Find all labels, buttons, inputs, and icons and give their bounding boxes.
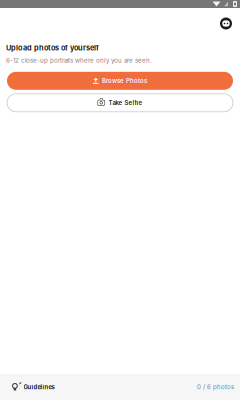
button[interactable]: Guidelines (12, 383, 54, 391)
staticText: 6-12 close-up portraits where only you a… (6, 57, 152, 64)
button[interactable]: Profile (220, 17, 232, 29)
staticText: Upload photos of yourself (6, 43, 99, 52)
staticText: 0 / 6 photos (197, 383, 234, 391)
staticText: Browse Photos (102, 77, 147, 84)
staticText: Guidelines (23, 383, 54, 391)
staticText: Take Selfie (108, 99, 142, 106)
button[interactable]: Take Selfie (7, 94, 233, 112)
button[interactable]: Browse Photos (7, 72, 233, 90)
